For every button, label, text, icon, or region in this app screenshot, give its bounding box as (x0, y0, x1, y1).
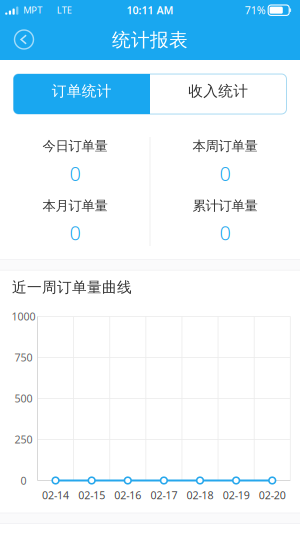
staticText: 0 (69, 160, 80, 186)
button[interactable]: 收入统计 (150, 74, 286, 114)
button[interactable]: Back (9, 24, 39, 54)
staticText: 0 (20, 473, 26, 488)
staticText: 750 (14, 350, 32, 364)
staticText: 0 (219, 160, 230, 186)
staticText: 02-18 (186, 488, 213, 502)
staticText: 02-19 (223, 488, 250, 502)
staticText: LTE (57, 4, 72, 16)
staticText: 0 (69, 219, 80, 246)
staticText: 今日订单量 (42, 138, 107, 154)
staticText: 02-20 (259, 488, 286, 502)
staticText: 250 (14, 432, 32, 447)
staticText: 02-15 (78, 488, 105, 502)
staticText: 统计报表 (112, 28, 188, 51)
staticText: 收入统计 (188, 82, 248, 100)
staticText: MPT (23, 4, 42, 16)
staticText: 累计订单量 (192, 198, 257, 214)
staticText: 10:11 AM (126, 3, 173, 17)
staticText: 1000 (11, 309, 35, 323)
staticText: 500 (14, 391, 32, 406)
staticText: 02-14 (42, 488, 69, 502)
staticText: 71% (245, 3, 266, 17)
staticText: 本月订单量 (42, 198, 107, 214)
staticText: 02-16 (114, 488, 141, 502)
staticText: 0 (219, 219, 230, 246)
staticText: 近一周订单量曲线 (12, 278, 132, 296)
button[interactable]: 订单统计 (13, 74, 150, 114)
staticText: 订单统计 (52, 82, 112, 100)
staticText: 02-17 (150, 488, 177, 502)
staticText: 本周订单量 (192, 138, 257, 154)
